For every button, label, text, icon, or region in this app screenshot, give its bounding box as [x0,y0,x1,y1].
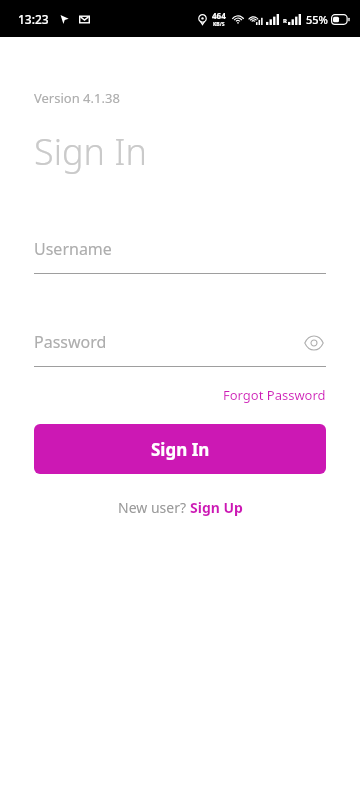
button[interactable]: Password [34,331,326,367]
staticText: 464 [212,10,226,21]
staticText: R [283,17,287,25]
button[interactable]: Sign In [34,424,326,474]
staticText: New user? [118,498,190,517]
button[interactable]: New user? [34,496,326,519]
staticText: Password [34,331,107,353]
button[interactable]: Forgot Password [223,384,326,406]
staticText: Forgot Password [223,386,326,404]
staticText: Sign In [34,127,147,176]
staticText: KB/S [213,21,225,28]
button[interactable]: Username [34,238,326,274]
staticText: Sign In [151,438,210,461]
staticText: Version 4.1.38 [34,89,120,107]
button[interactable]: Show password [302,331,326,355]
staticText: 55% [306,12,328,27]
staticText: 13:23 [18,11,49,27]
staticText: Sign Up [190,498,243,517]
staticText: Username [34,238,112,260]
